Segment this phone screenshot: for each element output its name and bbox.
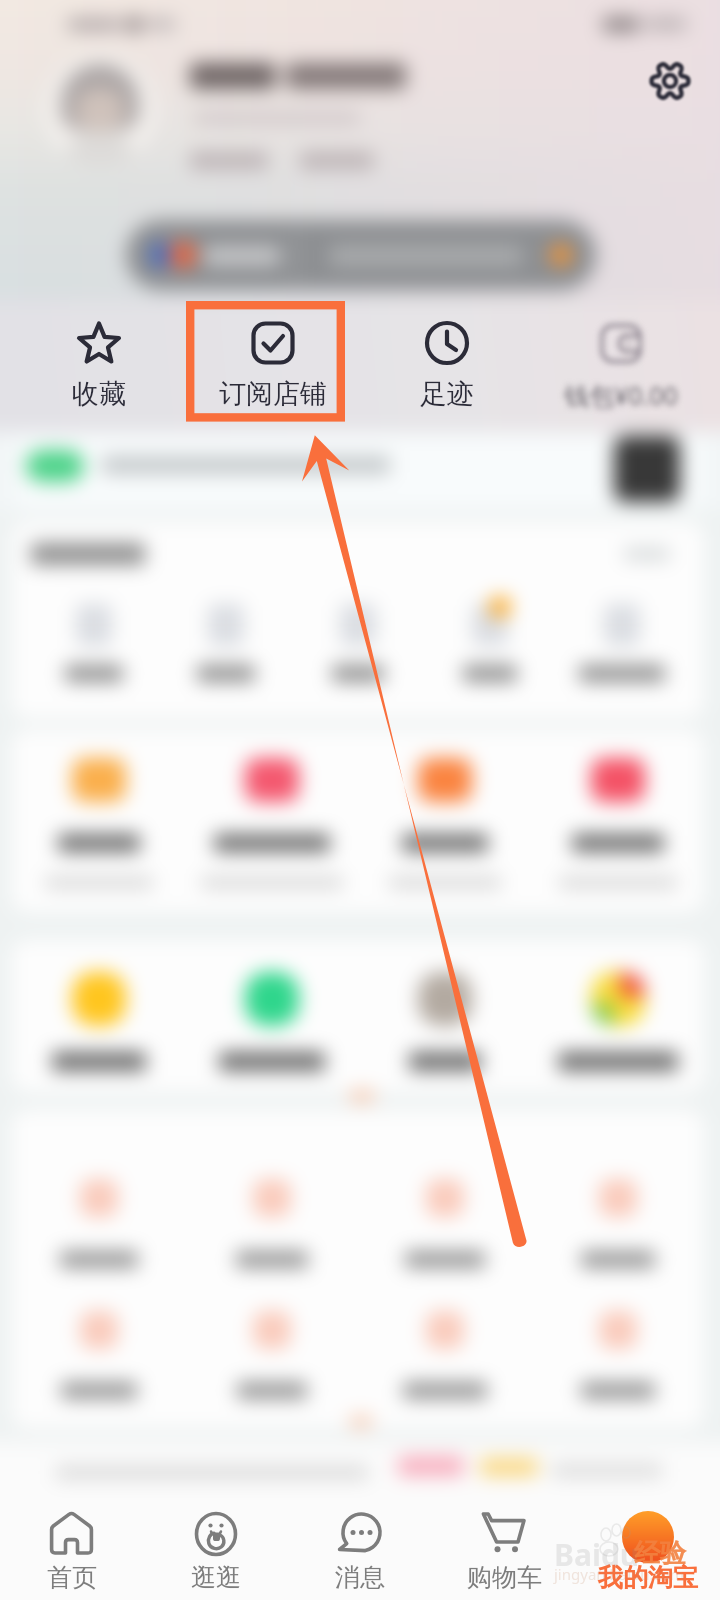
staticText: 订阅店铺 — [219, 377, 327, 411]
button[interactable]: 逛逛 — [144, 1504, 288, 1600]
staticText: jingyan.baidu.com — [554, 1564, 684, 1584]
staticText: Baidu — [554, 1534, 640, 1575]
button[interactable]: 收藏 — [11, 300, 186, 432]
button[interactable]: Settings — [644, 55, 696, 107]
staticText: 消息 — [335, 1562, 385, 1593]
staticText: 我的淘宝 — [598, 1562, 698, 1593]
staticText: 收藏 — [72, 377, 126, 411]
staticText: 购物车 — [467, 1562, 542, 1593]
staticText: 经验 — [634, 1537, 686, 1570]
staticText: 逛逛 — [191, 1562, 241, 1593]
staticText: 钱包¥0.00 — [564, 378, 678, 412]
button[interactable]: 首页 — [0, 1504, 144, 1600]
staticText: 足迹 — [420, 377, 474, 411]
button[interactable]: 购物车 — [432, 1504, 576, 1600]
button[interactable]: 订阅店铺 — [186, 300, 360, 432]
button[interactable]: 消息 — [288, 1504, 432, 1600]
button[interactable]: 钱包¥0.00 — [534, 300, 708, 432]
button[interactable]: 我的淘宝 — [576, 1504, 720, 1600]
button[interactable]: 足迹 — [360, 300, 534, 432]
staticText: 首页 — [47, 1562, 97, 1593]
